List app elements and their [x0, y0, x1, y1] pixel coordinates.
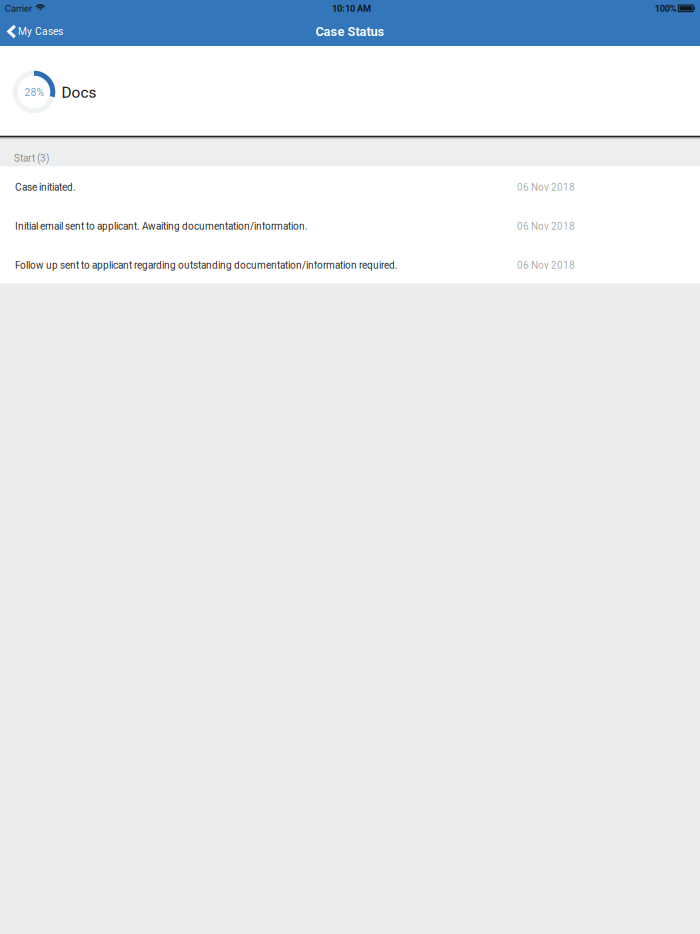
staticText: Docs	[61, 83, 96, 101]
staticText: 10:10 AM	[332, 3, 371, 14]
staticText: Case Status	[315, 24, 384, 39]
button[interactable]: Follow up sent to applicant regarding ou…	[0, 244, 700, 283]
button[interactable]: My Cases	[0, 18, 71, 44]
button[interactable]: Initial email sent to applicant. Awaitin…	[0, 205, 700, 244]
staticText: 06 Nov 2018	[517, 181, 575, 193]
staticText: Case initiated.	[15, 181, 76, 193]
staticText: Initial email sent to applicant. Awaitin…	[15, 220, 308, 232]
button[interactable]: Case initiated.	[0, 166, 700, 205]
staticText: 28%	[24, 86, 44, 99]
staticText: Follow up sent to applicant regarding ou…	[15, 259, 398, 271]
staticText: 06 Nov 2018	[517, 220, 575, 232]
staticText: My Cases	[18, 25, 63, 37]
staticText: Carrier	[5, 3, 32, 14]
staticText: Start (3)	[14, 152, 49, 164]
staticText: 100%	[655, 3, 677, 14]
staticText: 06 Nov 2018	[517, 259, 575, 271]
